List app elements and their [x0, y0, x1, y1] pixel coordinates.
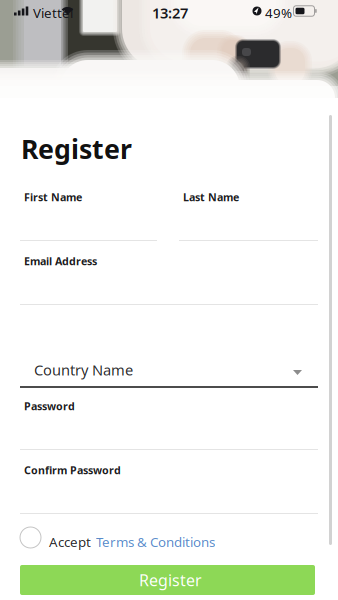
staticText: Confirm Password	[24, 463, 121, 477]
staticText: Accept	[49, 533, 91, 551]
staticText: Terms & Conditions	[96, 533, 215, 551]
staticText: First Name	[24, 190, 82, 204]
staticText: Register	[139, 569, 202, 591]
button[interactable]: Country Name	[20, 361, 318, 395]
button[interactable]: Accept terms and conditions	[17, 524, 44, 551]
button[interactable]: Terms & Conditions	[96, 533, 215, 551]
staticText: Register	[21, 131, 132, 166]
staticText: Password	[24, 399, 75, 413]
staticText: 49%	[265, 4, 292, 22]
staticText: Viettel	[33, 4, 73, 22]
button[interactable]: Register	[20, 565, 315, 595]
staticText: 13:27	[152, 3, 188, 22]
staticText: Country Name	[34, 360, 133, 379]
staticText: Email Address	[24, 254, 97, 268]
staticText: Last Name	[183, 190, 239, 204]
